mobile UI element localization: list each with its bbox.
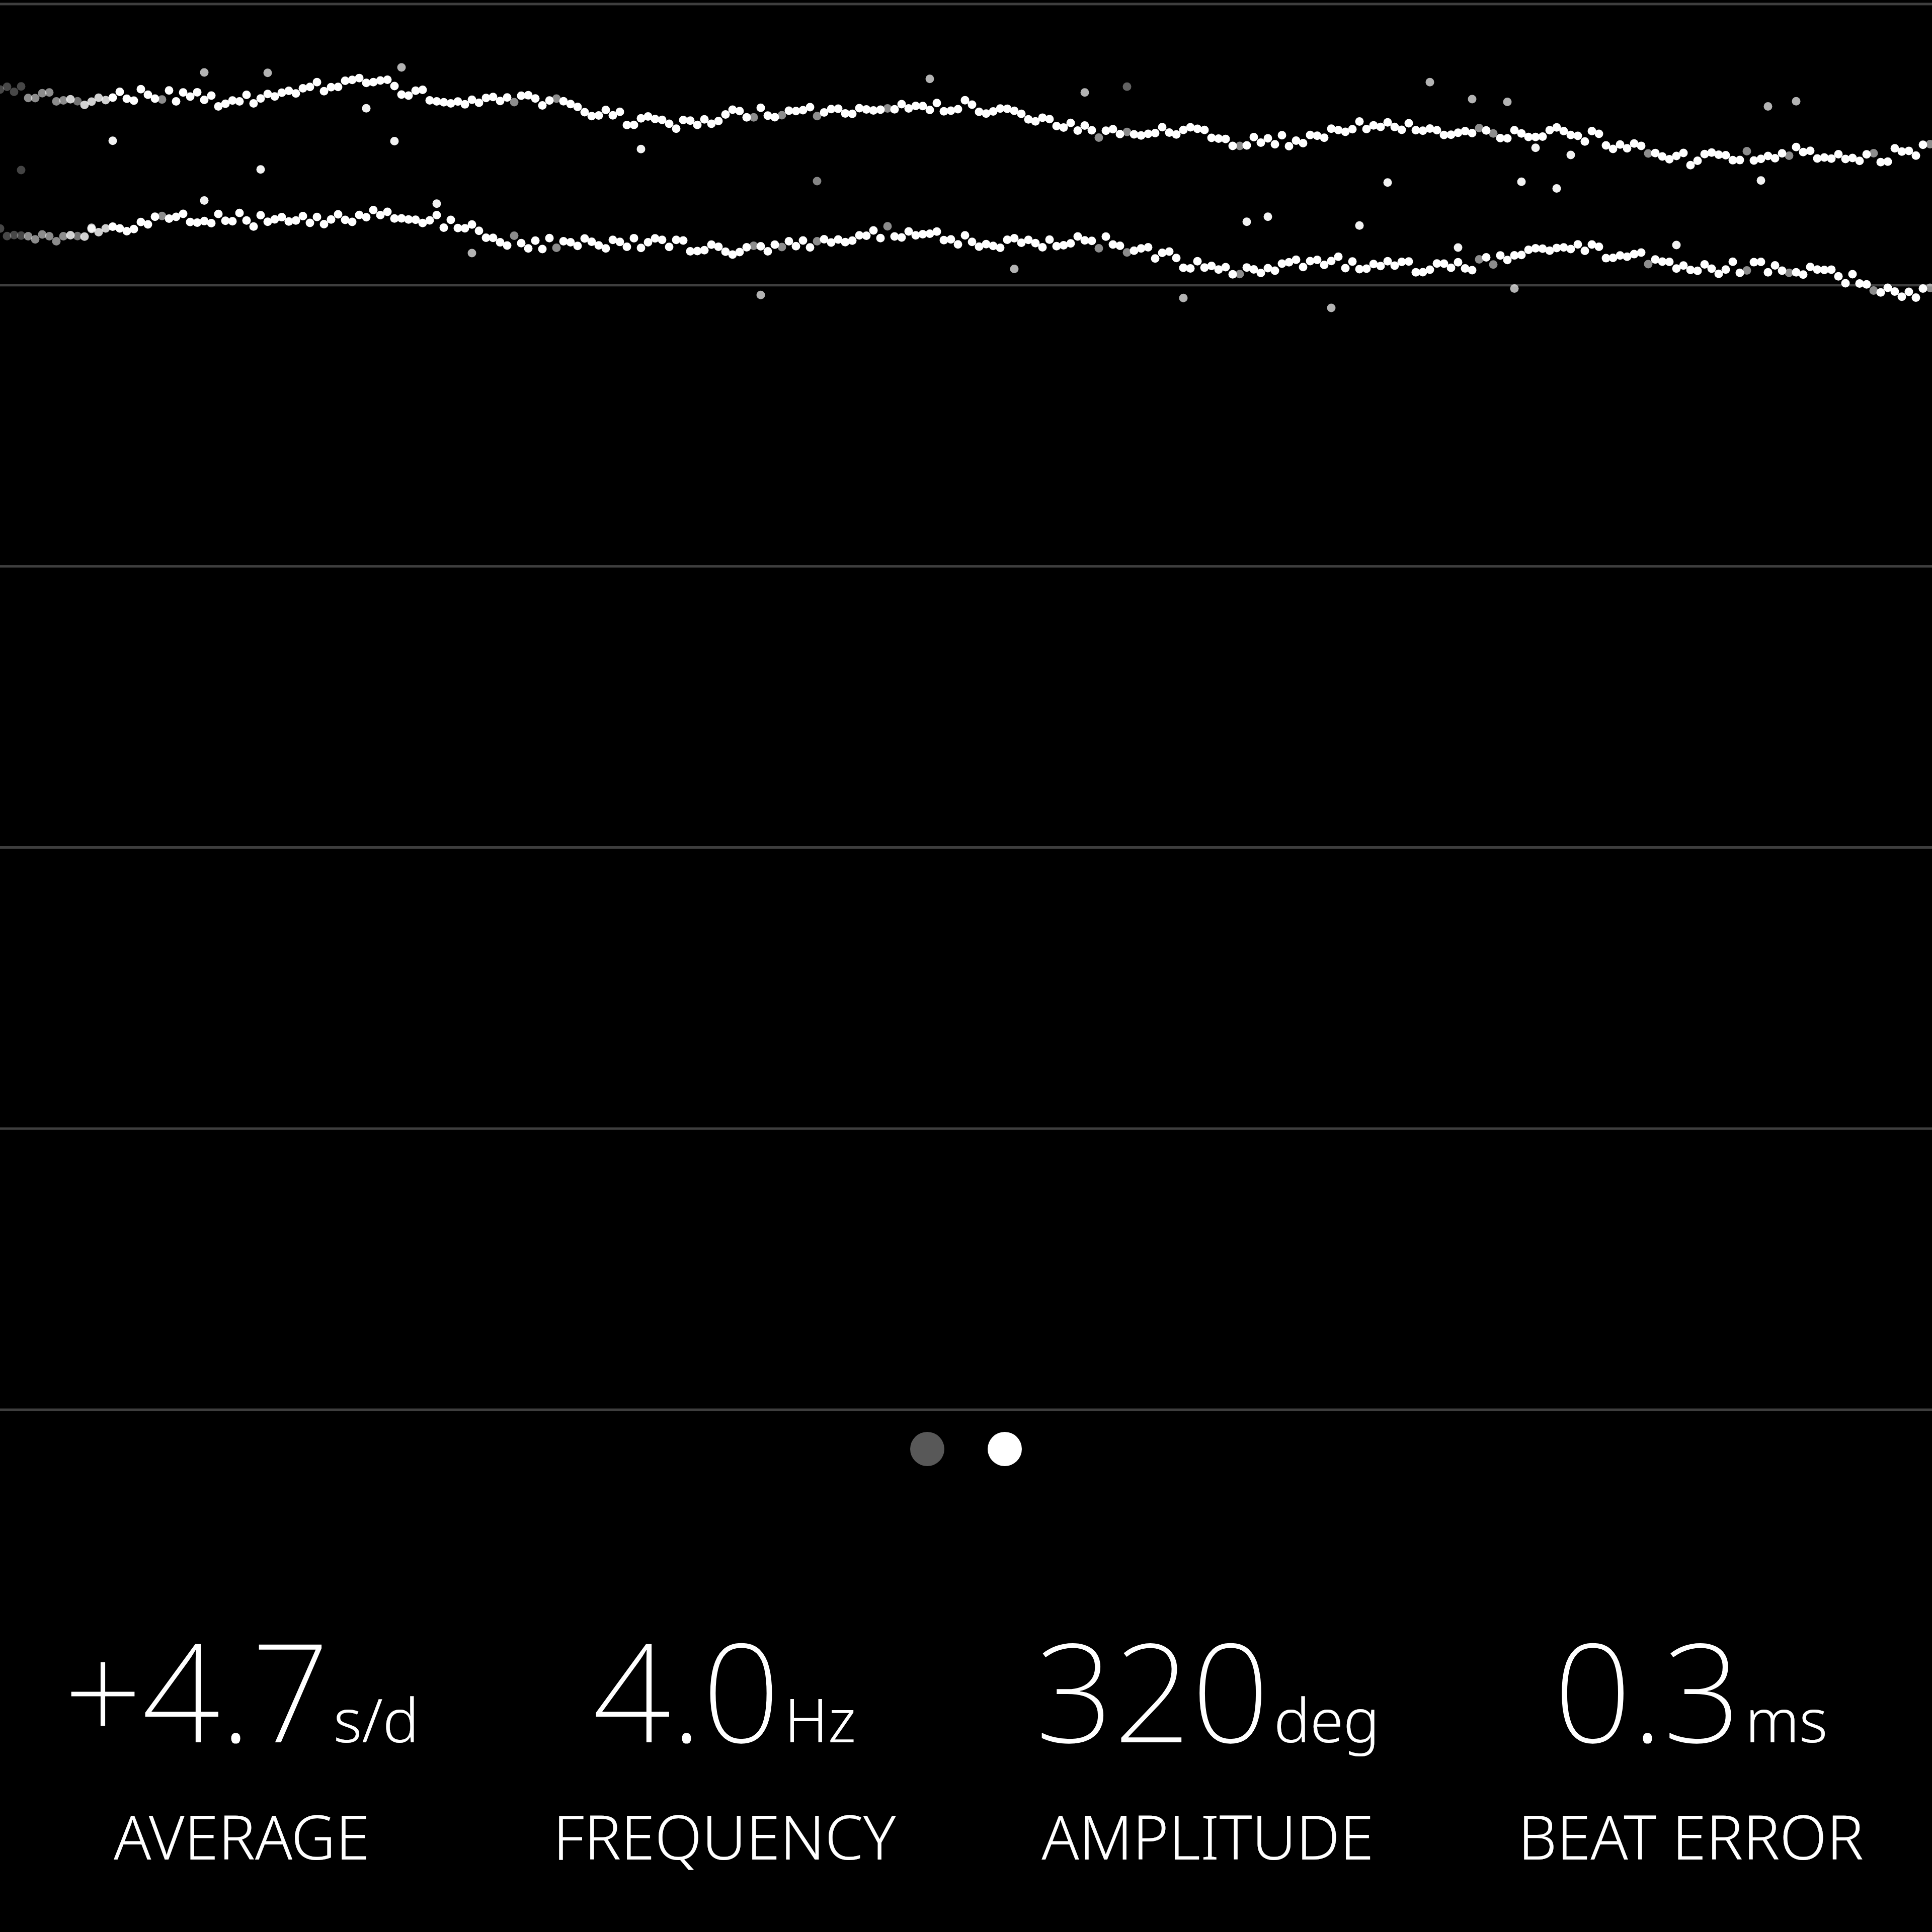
staticText: deg <box>1274 1678 1380 1760</box>
staticText: 4.0 <box>593 1596 780 1782</box>
button[interactable]: Rate trace chart <box>0 0 1932 1414</box>
staticText: s/d <box>334 1678 419 1760</box>
staticText: 0.3 <box>1554 1596 1741 1782</box>
staticText: AMPLITUDE <box>1041 1794 1374 1878</box>
staticText: BEAT ERROR <box>1518 1794 1864 1878</box>
staticText: AVERAGE <box>114 1794 370 1878</box>
staticText: 320 <box>1035 1596 1270 1782</box>
staticText: Hz <box>784 1678 856 1760</box>
staticText: +4.7 <box>64 1596 330 1782</box>
button[interactable]: Page 2 <box>988 1432 1022 1466</box>
button[interactable]: 4.0 <box>483 1596 966 1878</box>
button[interactable]: 0.3 <box>1449 1596 1932 1878</box>
button[interactable]: 320 <box>966 1596 1449 1878</box>
staticText: FREQUENCY <box>553 1794 896 1878</box>
staticText: ms <box>1745 1678 1828 1760</box>
button[interactable]: Page 1 <box>910 1432 944 1466</box>
button[interactable]: +4.7 <box>0 1596 483 1878</box>
